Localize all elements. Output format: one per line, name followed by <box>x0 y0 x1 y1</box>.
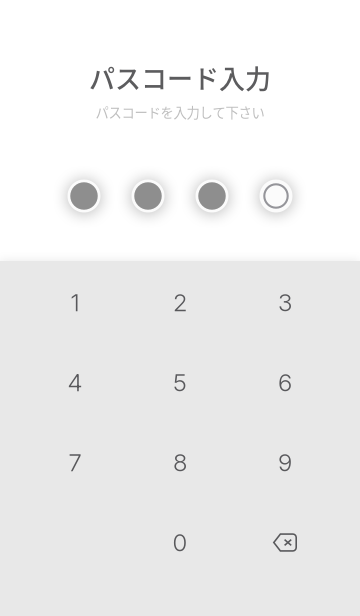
button[interactable]: 3 <box>232 262 337 342</box>
staticText: 4 <box>67 368 82 397</box>
staticText: 7 <box>68 448 81 477</box>
button[interactable]: 5 <box>127 342 232 422</box>
staticText: 9 <box>278 448 292 477</box>
staticText: 5 <box>173 368 187 397</box>
staticText: 8 <box>173 448 187 477</box>
staticText: 0 <box>172 528 187 557</box>
staticText: 6 <box>278 368 292 397</box>
button[interactable]: 6 <box>232 342 337 422</box>
button[interactable]: Delete <box>232 502 337 582</box>
staticText: 2 <box>173 288 187 317</box>
button[interactable]: 1 <box>22 262 127 342</box>
button[interactable]: 0 <box>127 502 232 582</box>
staticText: 3 <box>278 288 292 317</box>
staticText: パスコード入力 <box>89 59 271 96</box>
button[interactable]: 4 <box>22 342 127 422</box>
button[interactable]: 8 <box>127 422 232 502</box>
staticText: パスコードを入力して下さい <box>95 102 264 122</box>
button[interactable]: 9 <box>232 422 337 502</box>
button[interactable]: 7 <box>22 422 127 502</box>
staticText: 1 <box>70 288 79 317</box>
button[interactable]: 2 <box>127 262 232 342</box>
